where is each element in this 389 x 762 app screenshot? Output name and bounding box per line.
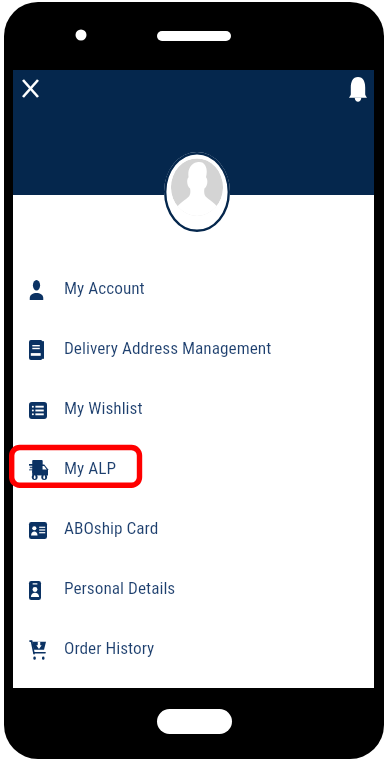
staticText: Personal Details [64,578,176,598]
staticText: My ALP [64,458,117,478]
button[interactable]: Personal Details [13,558,374,618]
button[interactable]: My Account [13,258,374,318]
button[interactable]: ABOship Card [13,498,374,558]
button[interactable]: Notifications [338,70,378,110]
staticText: My Wishlist [64,398,143,418]
staticText: Order History [64,638,155,658]
staticText: My Account [64,278,145,298]
button[interactable]: My ALP [13,438,374,498]
button[interactable]: Delivery Address Management [13,318,374,378]
button[interactable]: Close [10,68,50,108]
button[interactable]: Order History [13,618,374,678]
staticText: Delivery Address Management [64,338,272,358]
staticText: ABOship Card [64,518,159,538]
button[interactable]: My Wishlist [13,378,374,438]
